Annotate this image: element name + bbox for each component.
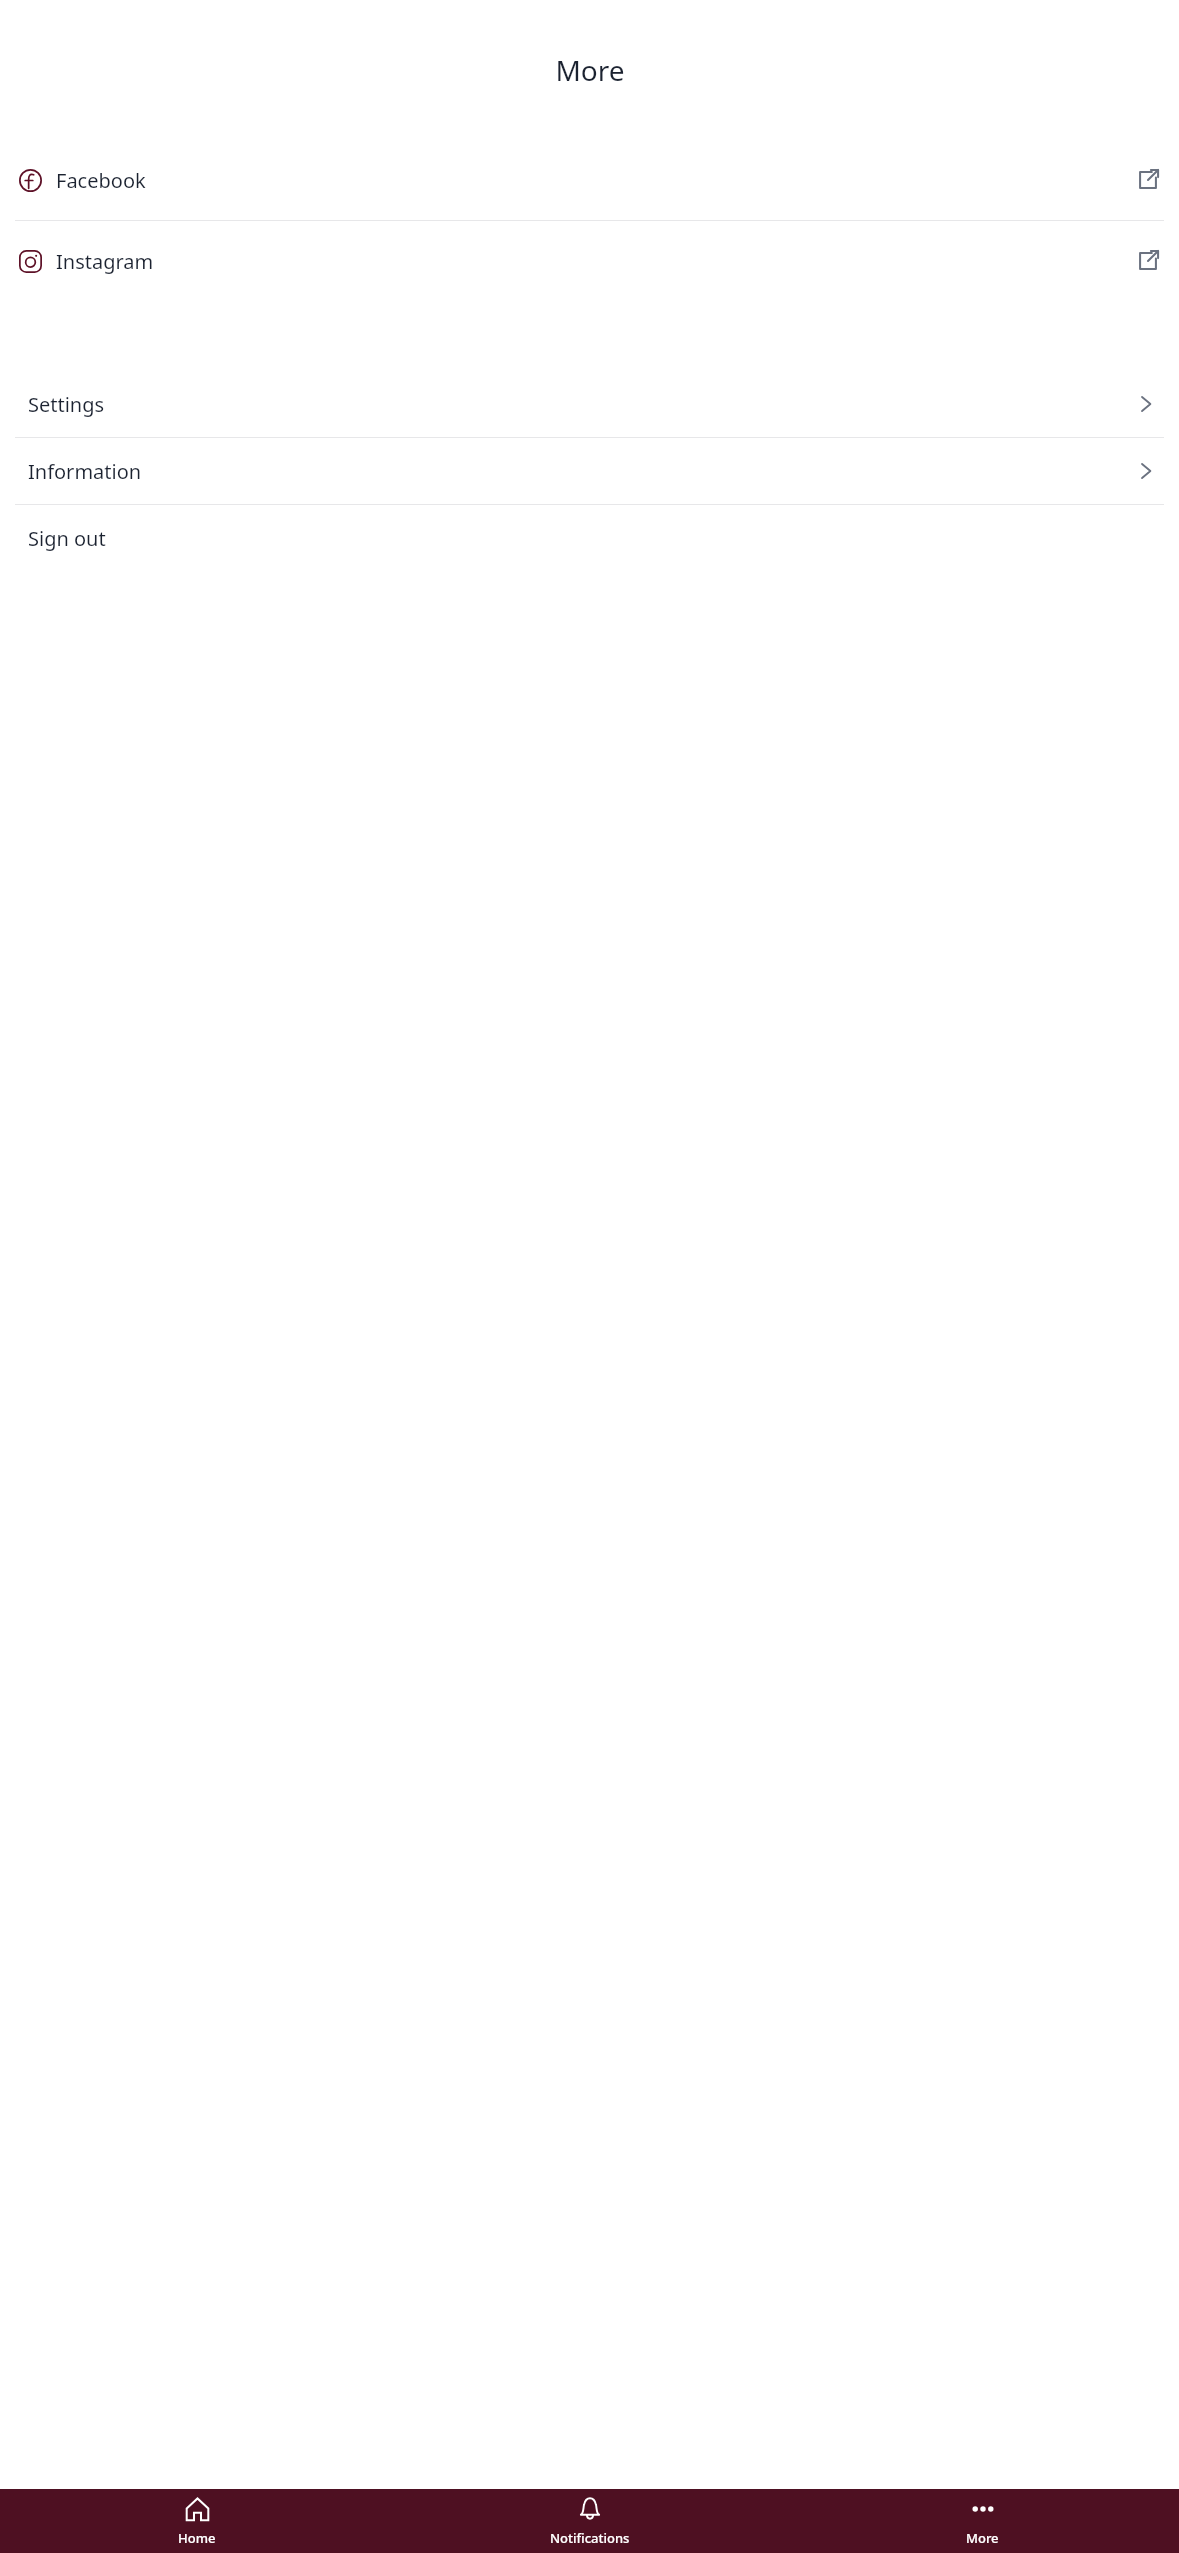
staticText: Sign out <box>28 525 106 552</box>
other: Open Instagram externally <box>1135 248 1161 274</box>
staticText: Instagram <box>56 248 154 275</box>
staticText: Facebook <box>56 167 146 194</box>
button[interactable]: Information <box>0 438 1179 504</box>
button[interactable]: Instagram <box>0 221 1179 301</box>
button[interactable]: Settings <box>0 371 1179 437</box>
staticText: More <box>966 2529 999 2547</box>
staticText: Information <box>28 458 142 485</box>
staticText: Notifications <box>550 2529 630 2547</box>
staticText: More <box>555 51 625 89</box>
staticText: Settings <box>28 391 105 418</box>
button[interactable]: Sign out <box>0 505 1179 571</box>
button[interactable]: Home <box>0 2489 393 2553</box>
button[interactable]: Notifications <box>393 2489 786 2553</box>
button[interactable]: More <box>786 2489 1179 2553</box>
button[interactable]: Facebook <box>0 140 1179 220</box>
other: Open Facebook externally <box>1135 167 1161 193</box>
staticText: Home <box>178 2529 216 2547</box>
